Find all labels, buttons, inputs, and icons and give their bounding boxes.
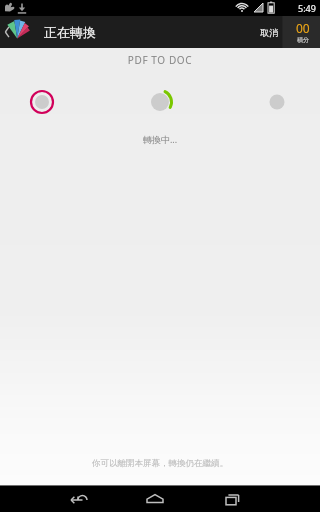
staticText: 取消 <box>260 27 278 38</box>
button[interactable]: Home <box>134 485 176 512</box>
button[interactable]: 00 <box>286 16 320 48</box>
staticText: 00 <box>296 20 310 36</box>
button[interactable]: Back <box>56 485 98 512</box>
button[interactable]: 取消 <box>252 16 286 48</box>
staticText: 5:49 <box>298 2 316 14</box>
button[interactable]: Recent apps <box>212 485 254 512</box>
staticText: 正在轉換 <box>44 24 96 40</box>
button[interactable]: Navigate up <box>0 16 38 48</box>
staticText: PDF TO DOC <box>0 53 320 67</box>
staticText: 你可以離開本屏幕，轉換仍在繼續。 <box>0 458 320 469</box>
staticText: 轉換中... <box>0 133 320 145</box>
staticText: 積分 <box>297 36 309 44</box>
